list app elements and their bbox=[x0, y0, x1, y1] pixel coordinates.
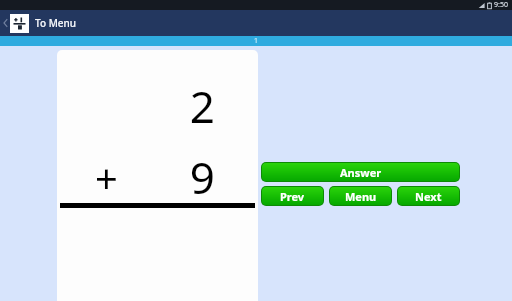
staticText: 2 bbox=[189, 76, 215, 136]
button[interactable]: App icon bbox=[0, 10, 512, 36]
staticText: To Menu bbox=[35, 16, 77, 30]
staticText: 1 bbox=[254, 36, 259, 46]
staticText: Prev bbox=[280, 189, 305, 204]
button[interactable]: Prev bbox=[262, 187, 323, 205]
staticText: + bbox=[95, 150, 118, 204]
button[interactable]: Next bbox=[398, 187, 459, 205]
staticText: 9:50 bbox=[494, 0, 508, 10]
other: App icon bbox=[10, 14, 29, 33]
button[interactable]: Answer bbox=[262, 163, 459, 181]
staticText: Menu bbox=[345, 189, 377, 204]
button[interactable]: 2 bbox=[57, 50, 258, 301]
staticText: 9 bbox=[189, 147, 215, 207]
button[interactable]: Menu bbox=[330, 187, 391, 205]
staticText: Answer bbox=[340, 165, 382, 180]
staticText: Next bbox=[415, 189, 442, 204]
